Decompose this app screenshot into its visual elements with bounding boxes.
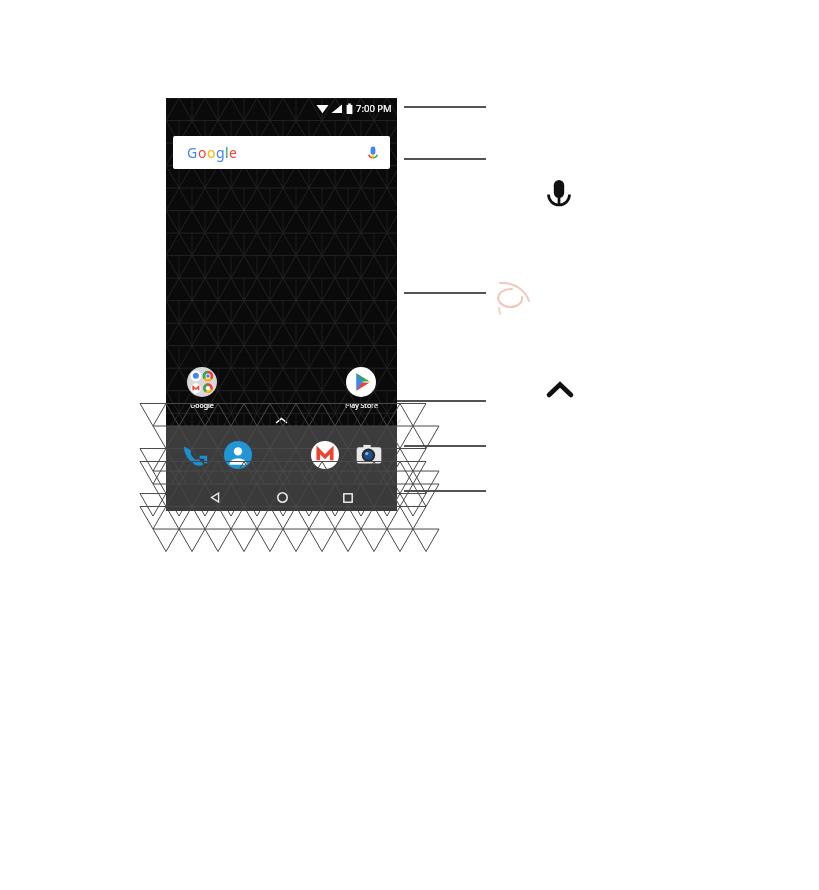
staticText: Play Store [345, 401, 378, 411]
staticText: 7:00 PM [356, 102, 392, 115]
button[interactable]: G [173, 136, 390, 169]
staticText: G [187, 143, 198, 162]
other: Play Store [346, 367, 376, 397]
staticText: Google [190, 401, 214, 411]
button[interactable]: Open all apps [166, 415, 397, 426]
button[interactable]: Gmail [311, 441, 339, 469]
button[interactable]: Play Store [335, 367, 387, 411]
button[interactable]: Phone [180, 441, 208, 469]
other: Google folder [187, 367, 217, 397]
button[interactable]: Voice search microphone [543, 176, 575, 208]
button[interactable]: Home [265, 484, 299, 511]
staticText: o [198, 143, 207, 162]
button[interactable]: Recent apps [331, 484, 365, 511]
button[interactable]: Voice search [365, 145, 381, 161]
button[interactable]: Back [198, 484, 232, 511]
button[interactable]: Contacts [224, 441, 252, 469]
button[interactable]: Camera [355, 441, 383, 469]
button[interactable]: Google folder [176, 367, 228, 411]
staticText: l [225, 143, 229, 162]
staticText: e [229, 143, 237, 162]
staticText: o [207, 143, 216, 162]
button[interactable]: Open all apps [545, 378, 575, 404]
staticText: g [216, 143, 225, 162]
